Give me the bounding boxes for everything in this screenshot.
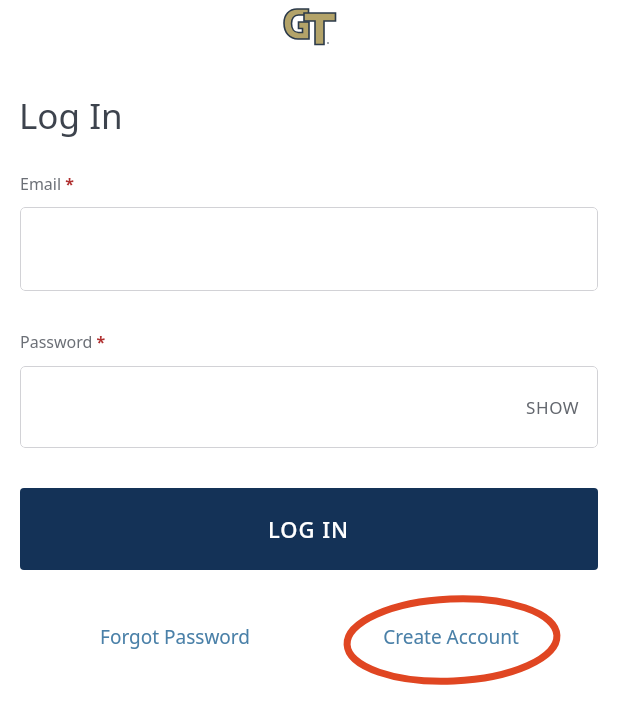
staticText: Create Account	[383, 624, 519, 650]
staticText: Email *	[20, 173, 74, 195]
staticText: Forgot Password	[100, 624, 250, 650]
button[interactable]: LOG IN	[20, 488, 598, 570]
button[interactable]: Password input field	[20, 366, 598, 448]
other: Georgia Tech logo	[283, 7, 337, 47]
button[interactable]: Forgot Password	[75, 612, 275, 662]
staticText: Password *	[20, 331, 106, 353]
staticText: LOG IN	[268, 514, 350, 544]
button[interactable]: SHOW	[508, 388, 598, 427]
staticText: SHOW	[526, 396, 580, 419]
button[interactable]: Create Account	[366, 612, 536, 662]
staticText: Log In	[19, 92, 123, 140]
button[interactable]: Email input field	[20, 207, 598, 291]
